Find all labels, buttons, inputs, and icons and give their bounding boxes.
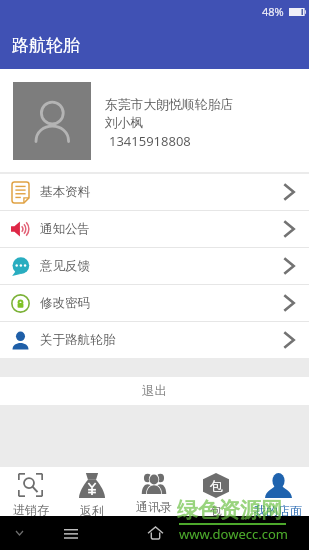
staticText: 通知公告 [40, 221, 90, 237]
button[interactable]: Menu [57, 516, 85, 550]
staticText: 我的店面 [254, 503, 302, 516]
staticText: 意见反馈 [40, 258, 90, 274]
staticText: 修改密码 [40, 295, 90, 311]
button[interactable]: Back [5, 516, 33, 550]
staticText: 包 [210, 503, 222, 516]
staticText: 通讯录 [136, 499, 172, 514]
staticText: www.dowecc.com [179, 525, 288, 543]
button[interactable]: 基本资料 [0, 174, 309, 210]
staticText: 返利 [80, 503, 104, 516]
button[interactable]: 意见反馈 [0, 248, 309, 284]
staticText: 退出 [142, 383, 167, 399]
button[interactable]: 通知公告 [0, 211, 309, 247]
staticText: 东莞市大朗悦顺轮胎店 [105, 97, 233, 113]
button[interactable]: 关于路航轮胎 [0, 322, 309, 358]
staticText: 基本资料 [40, 184, 90, 200]
button[interactable]: 进销存 [0, 467, 61, 516]
button[interactable]: 我的店面 [247, 467, 309, 516]
staticText: 关于路航轮胎 [40, 332, 115, 348]
staticText: 13415918808 [109, 132, 191, 150]
button[interactable]: 包 [185, 467, 247, 516]
button[interactable]: 返利 [61, 467, 123, 516]
staticText: 路航轮胎 [12, 35, 80, 56]
button[interactable]: 退出 [0, 377, 309, 405]
staticText: 包 [210, 478, 223, 494]
staticText: 48% [262, 4, 284, 19]
staticText: 进销存 [13, 502, 49, 516]
staticText: 刘小枫 [105, 115, 144, 131]
button[interactable]: 通讯录 [123, 467, 185, 516]
staticText: 绿色资源网 [177, 497, 282, 523]
button[interactable]: Home [141, 516, 169, 550]
button[interactable]: 修改密码 [0, 285, 309, 321]
